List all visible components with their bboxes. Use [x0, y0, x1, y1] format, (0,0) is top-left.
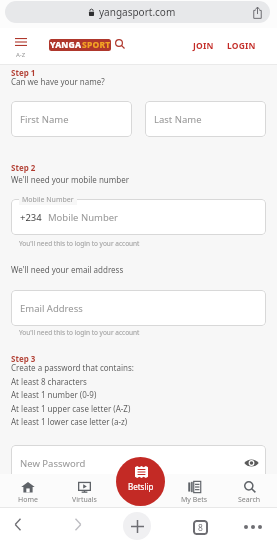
button[interactable]: YANGA — [49, 39, 111, 51]
staticText: JOIN — [193, 40, 214, 52]
button[interactable]: Menu A-Z — [10, 33, 33, 61]
staticText: YANGA — [50, 39, 82, 51]
staticText: You'll need this to login to your accoun… — [19, 328, 140, 337]
button[interactable]: LOGIN — [224, 37, 259, 55]
button[interactable]: New Password — [11, 445, 266, 481]
button[interactable]: Tabs — [186, 513, 214, 541]
staticText: Mobile Number — [48, 211, 119, 224]
staticText: A-Z — [16, 51, 26, 59]
button[interactable]: yangasport.com — [5, 1, 270, 23]
staticText: Virtuals — [72, 495, 97, 505]
staticText: Step 2 — [11, 162, 36, 173]
staticText: Last Name — [154, 113, 202, 126]
button[interactable]: Search — [222, 474, 277, 508]
staticText: We'll need your email address — [11, 264, 124, 275]
button[interactable]: Back — [4, 510, 32, 538]
button[interactable]: First Name — [11, 101, 132, 137]
staticText: At least 1 number (0-9) — [11, 389, 97, 400]
staticText: My Bets — [181, 495, 208, 505]
button[interactable]: More — [239, 513, 267, 541]
staticText: Betslip — [128, 481, 154, 492]
staticText: SPORT — [82, 39, 111, 51]
button[interactable]: Last Name — [145, 101, 266, 137]
staticText: First Name — [20, 113, 69, 126]
button[interactable]: Betslip — [116, 457, 165, 506]
staticText: Email Address — [20, 302, 83, 315]
staticText: Step 1 — [11, 67, 36, 78]
button[interactable]: JOIN — [189, 37, 217, 55]
staticText: LOGIN — [227, 40, 256, 52]
button[interactable]: Virtuals — [56, 474, 112, 508]
staticText: You'll need this to login to your accoun… — [19, 239, 140, 248]
staticText: Can we have your name? — [11, 76, 105, 87]
staticText: Search — [238, 495, 261, 505]
staticText: Create a password that contains: — [11, 362, 134, 373]
staticText: New Password — [20, 457, 86, 470]
button[interactable]: Forward — [64, 510, 92, 538]
button[interactable]: Search — [113, 37, 127, 51]
staticText: Home — [18, 495, 38, 505]
button[interactable]: Home — [0, 474, 56, 508]
button[interactable]: New tab — [123, 512, 151, 540]
staticText: At least 1 lower case letter (a-z) — [11, 416, 128, 427]
staticText: +234 — [20, 211, 42, 224]
staticText: Step 3 — [11, 353, 36, 364]
staticText: 8 — [198, 522, 203, 534]
button[interactable]: +234 — [11, 199, 266, 235]
staticText: yangasport.com — [99, 5, 176, 19]
staticText: At least 1 upper case letter (A-Z) — [11, 403, 131, 414]
staticText: We'll need your mobile number — [11, 174, 129, 185]
staticText: At least 8 characters — [11, 376, 87, 387]
button[interactable]: My Bets — [167, 474, 222, 508]
button[interactable]: Share — [248, 3, 266, 21]
staticText: Mobile Number — [22, 195, 74, 205]
button[interactable]: Show password — [242, 454, 260, 472]
button[interactable]: Email Address — [11, 290, 266, 326]
